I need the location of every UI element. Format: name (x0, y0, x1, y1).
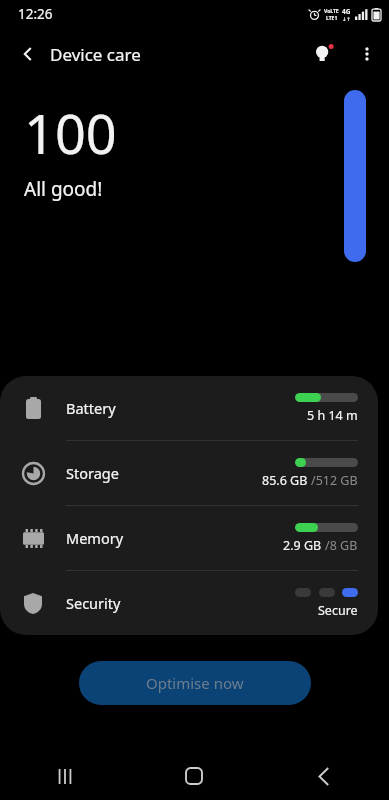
button[interactable]: More options (345, 32, 389, 76)
staticText: Optimise now (146, 673, 244, 693)
staticText: Device care (50, 43, 141, 66)
button[interactable]: Battery (0, 376, 378, 440)
staticText: ↓↑ (342, 16, 351, 22)
staticText: All good! (24, 176, 103, 202)
staticText: 100 (24, 96, 117, 170)
staticText: Memory (66, 528, 283, 548)
staticText: 4G (342, 7, 351, 16)
staticText: LTE1 (326, 15, 338, 22)
button[interactable]: Back (8, 34, 48, 74)
button[interactable]: Recent apps (0, 752, 129, 800)
staticText: 2.9 GB (283, 537, 325, 554)
button[interactable]: Home (129, 752, 259, 800)
staticText: /8 GB (325, 537, 358, 554)
staticText: Security (66, 593, 295, 613)
staticText: Battery (66, 398, 295, 418)
staticText: /512 GB (311, 472, 358, 489)
staticText: VoLTE (324, 8, 339, 15)
button[interactable]: Memory (0, 506, 378, 570)
staticText: Storage (66, 463, 262, 483)
button[interactable]: Back (259, 752, 389, 800)
staticText: 5 h 14 m (307, 407, 358, 424)
button[interactable]: Storage (0, 441, 378, 505)
staticText: Secure (318, 602, 358, 619)
button[interactable]: Optimise now (79, 661, 311, 705)
button[interactable]: Tips (301, 32, 345, 76)
staticText: 85.6 GB (262, 472, 311, 489)
staticText: 12:26 (18, 5, 53, 23)
button[interactable]: Security (0, 571, 378, 635)
